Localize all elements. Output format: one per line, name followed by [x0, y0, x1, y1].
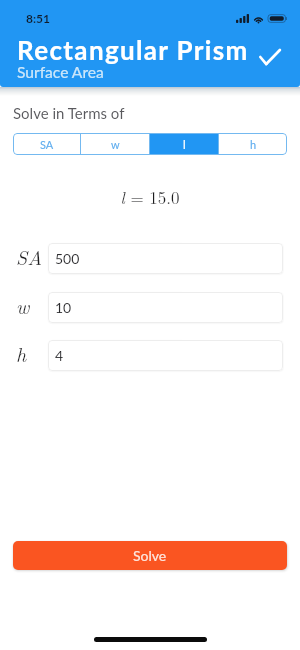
staticText: SA	[40, 138, 54, 151]
staticText: Surface Area	[17, 63, 104, 82]
staticText: h	[250, 138, 257, 151]
staticText: l	[183, 138, 186, 151]
button[interactable]: 500	[48, 243, 283, 274]
staticText: l = 15.0	[0, 185, 300, 209]
button[interactable]: l	[150, 133, 218, 155]
staticText: 4	[55, 347, 64, 364]
staticText: Rectangular Prism	[17, 34, 249, 65]
staticText: w	[111, 138, 120, 151]
button[interactable]: h	[219, 133, 287, 155]
staticText: 10	[55, 299, 72, 316]
staticText: 8:51	[26, 11, 50, 25]
staticText: w	[16, 291, 30, 319]
button[interactable]: Solve	[13, 541, 287, 570]
staticText: h	[16, 339, 27, 367]
staticText: Solve in Terms of	[13, 104, 125, 122]
button[interactable]: SA	[13, 133, 80, 155]
button[interactable]: 10	[48, 292, 283, 323]
staticText: 500	[55, 250, 80, 267]
button[interactable]: w	[81, 133, 149, 155]
button[interactable]: Done	[250, 37, 290, 77]
staticText: SA	[16, 242, 43, 270]
staticText: Solve	[133, 547, 167, 564]
button[interactable]: 4	[48, 340, 283, 371]
